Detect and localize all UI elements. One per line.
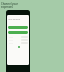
staticText: expenses	[1, 5, 13, 9]
button[interactable]: Send money	[8, 26, 28, 29]
staticText: Channel your	[1, 2, 18, 6]
button[interactable]	[7, 36, 29, 38]
button[interactable]: Request money	[8, 31, 28, 34]
staticText: Your balance	[8, 18, 21, 21]
button[interactable]	[7, 42, 29, 44]
button[interactable]	[7, 39, 29, 41]
